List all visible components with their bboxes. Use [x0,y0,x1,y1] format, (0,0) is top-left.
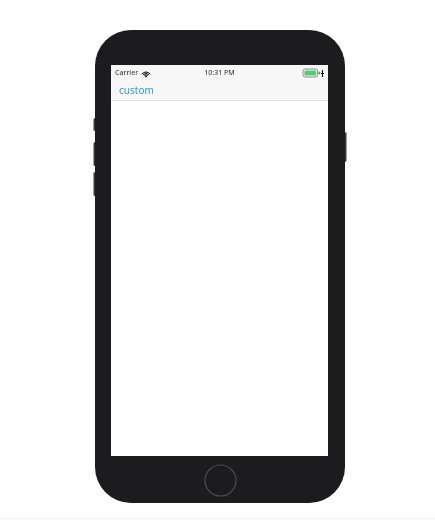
staticText: custom [119,83,154,97]
staticText: Carrier [115,68,139,78]
button[interactable]: Home [204,464,237,497]
button[interactable]: custom [117,81,156,99]
staticText: 10:31 PM [204,68,235,78]
